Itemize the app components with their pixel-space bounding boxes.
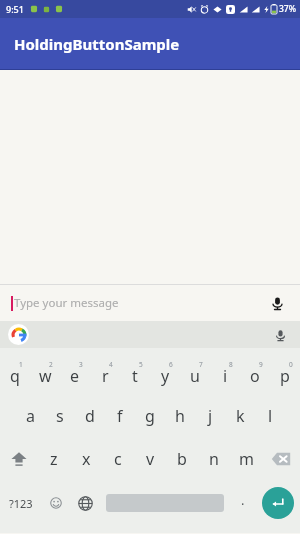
- button[interactable]: 8: [210, 352, 240, 394]
- staticText: k: [236, 405, 245, 427]
- button[interactable]: a: [15, 394, 45, 437]
- staticText: 7: [199, 360, 203, 369]
- button[interactable]: Backspace: [262, 437, 300, 480]
- staticText: j: [208, 405, 213, 427]
- staticText: 9: [259, 360, 263, 369]
- button[interactable]: 9: [240, 352, 270, 394]
- button[interactable]: v: [134, 437, 166, 480]
- staticText: v: [146, 448, 155, 470]
- staticText: ?123: [9, 496, 33, 511]
- staticText: 5: [139, 360, 143, 369]
- staticText: w: [39, 365, 52, 387]
- staticText: x: [82, 448, 91, 470]
- staticText: q: [10, 365, 20, 387]
- button[interactable]: Shift: [0, 437, 38, 480]
- staticText: c: [114, 448, 122, 470]
- staticText: f: [117, 405, 123, 427]
- staticText: 3: [79, 360, 83, 369]
- button[interactable]: m: [230, 437, 262, 480]
- button[interactable]: f: [105, 394, 135, 437]
- staticText: u: [190, 365, 200, 387]
- staticText: h: [175, 405, 185, 427]
- button[interactable]: Record voice message: [264, 290, 290, 316]
- staticText: l: [268, 405, 273, 427]
- button[interactable]: Voice input: [270, 325, 290, 345]
- staticText: s: [56, 405, 64, 427]
- button[interactable]: x: [70, 437, 102, 480]
- staticText: Type your message: [14, 295, 119, 311]
- staticText: 4: [109, 360, 113, 369]
- button[interactable]: b: [166, 437, 198, 480]
- staticText: b: [177, 448, 187, 470]
- staticText: 37%: [279, 3, 296, 15]
- button[interactable]: n: [198, 437, 230, 480]
- staticText: g: [145, 405, 155, 427]
- button[interactable]: 3: [60, 352, 90, 394]
- button[interactable]: l: [255, 394, 285, 437]
- button[interactable]: g: [135, 394, 165, 437]
- staticText: 0: [289, 360, 293, 369]
- staticText: r: [102, 365, 109, 387]
- button[interactable]: Google search: [8, 324, 29, 345]
- button[interactable]: k: [225, 394, 255, 437]
- button[interactable]: s: [45, 394, 75, 437]
- button[interactable]: h: [165, 394, 195, 437]
- staticText: d: [85, 405, 95, 427]
- staticText: m: [239, 448, 254, 470]
- button[interactable]: z: [38, 437, 70, 480]
- staticText: e: [70, 365, 80, 387]
- staticText: p: [280, 365, 290, 387]
- button[interactable]: 6: [150, 352, 180, 394]
- button[interactable]: Emoji: [42, 480, 70, 526]
- staticText: .: [241, 491, 245, 509]
- button[interactable]: .: [230, 480, 256, 526]
- staticText: HoldingButtonSample: [14, 34, 180, 54]
- button[interactable]: d: [75, 394, 105, 437]
- button[interactable]: 7: [180, 352, 210, 394]
- staticText: 2: [49, 360, 53, 369]
- button[interactable]: 1: [0, 352, 30, 394]
- button[interactable]: Enter: [262, 487, 294, 519]
- button[interactable]: c: [102, 437, 134, 480]
- button[interactable]: 4: [90, 352, 120, 394]
- staticText: z: [50, 448, 58, 470]
- staticText: 1: [19, 360, 23, 369]
- staticText: a: [26, 405, 35, 427]
- staticText: 8: [229, 360, 233, 369]
- staticText: y: [161, 365, 170, 387]
- button[interactable]: 0: [270, 352, 300, 394]
- staticText: o: [250, 365, 260, 387]
- button[interactable]: 5: [120, 352, 150, 394]
- staticText: 9:51: [6, 3, 24, 15]
- button[interactable]: 2: [30, 352, 60, 394]
- staticText: 6: [169, 360, 173, 369]
- button[interactable]: Change language: [70, 480, 100, 526]
- button[interactable]: ?123: [0, 480, 42, 526]
- staticText: i: [223, 365, 228, 387]
- staticText: n: [209, 448, 219, 470]
- button[interactable]: Type your message: [0, 285, 300, 321]
- button[interactable]: j: [195, 394, 225, 437]
- staticText: t: [132, 365, 138, 387]
